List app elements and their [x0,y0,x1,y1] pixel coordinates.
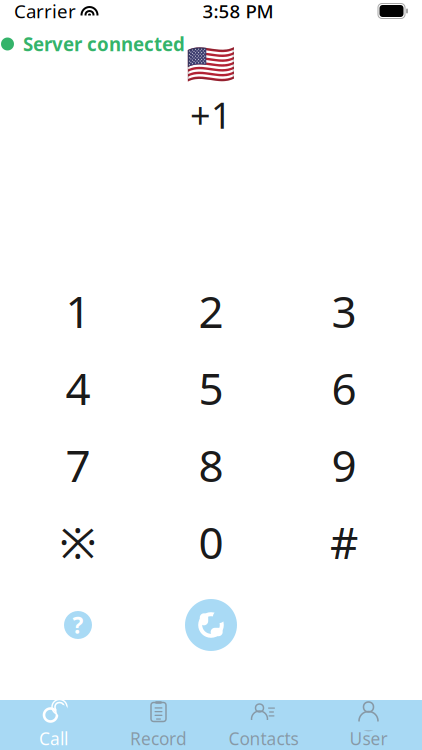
staticText: Server connected [23,32,185,56]
button[interactable]: User [316,700,421,750]
staticText: 9 [331,436,356,494]
staticText: 0 [198,513,223,571]
staticText: ? [72,610,83,640]
staticText: # [330,513,358,571]
staticText: Record [130,727,187,750]
staticText: 3 [331,282,356,340]
staticText: Contacts [228,727,298,750]
button[interactable]: Contacts [211,700,316,750]
button[interactable]: # [290,506,398,578]
staticText: ※ [59,513,96,571]
staticText: 5 [198,359,223,417]
button[interactable]: 2 [157,275,265,347]
staticText: Carrier [14,0,76,23]
staticText: 1 [65,282,90,340]
button[interactable]: 5 [157,352,265,424]
button[interactable]: ※ [24,506,132,578]
button[interactable]: 4 [24,352,132,424]
button[interactable]: 6 [290,352,398,424]
staticText: 4 [65,359,90,417]
button[interactable]: 3 [290,275,398,347]
staticText: 2 [198,282,223,340]
staticText: 🇺🇸 [186,41,236,87]
button[interactable]: Record [106,700,211,750]
staticText: 3:58 PM [202,0,273,23]
button[interactable]: 1 [24,275,132,347]
button[interactable]: 9 [290,429,398,501]
button[interactable]: 8 [157,429,265,501]
button[interactable]: 0 [157,506,265,578]
button[interactable]: Call [1,700,106,750]
staticText: 8 [198,436,223,494]
button[interactable]: Call [179,593,243,657]
button[interactable]: 7 [24,429,132,501]
button[interactable]: Help [56,603,100,647]
staticText: 7 [65,436,90,494]
staticText: Call [39,727,68,750]
staticText: User [349,727,387,750]
staticText: +1 [190,91,232,139]
staticText: 6 [331,359,356,417]
